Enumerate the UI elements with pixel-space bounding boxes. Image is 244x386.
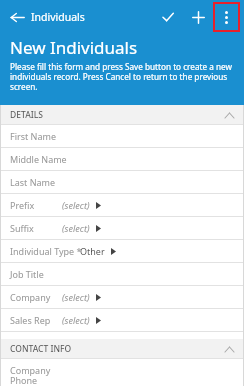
button[interactable]: First Name	[0, 125, 244, 147]
staticText: (select)	[62, 222, 90, 234]
button[interactable]: Middle Name	[0, 148, 244, 170]
button[interactable]: DETAILS	[0, 105, 244, 124]
staticText: Individual Type *	[10, 245, 82, 257]
staticText: Suffix	[10, 222, 34, 234]
button[interactable]: Individuals	[0, 0, 93, 34]
staticText: Please fill this form and press Save but…	[10, 61, 232, 93]
staticText: Prefix	[10, 199, 35, 211]
button[interactable]: Save	[153, 2, 183, 32]
button[interactable]: Job Title	[0, 263, 244, 285]
button[interactable]: Last Name	[0, 171, 244, 193]
staticText: Last Name	[10, 176, 56, 188]
button[interactable]: Individual Type *	[0, 240, 244, 262]
staticText: New Individuals	[10, 36, 138, 59]
staticText: Company	[10, 291, 51, 303]
staticText: CONTACT INFO	[10, 343, 72, 355]
staticText: Middle Name	[10, 153, 67, 165]
staticText: (select)	[62, 291, 90, 303]
button[interactable]: Company Phone	[0, 359, 244, 386]
staticText: DETAILS	[10, 109, 43, 121]
button[interactable]: CONTACT INFO	[0, 339, 244, 358]
staticText: (select)	[62, 314, 90, 326]
button[interactable]: Add	[183, 2, 213, 32]
button[interactable]: Sales Rep	[0, 309, 244, 331]
staticText: Other	[80, 245, 105, 257]
button[interactable]: Suffix	[0, 217, 244, 239]
staticText: Company Phone	[10, 364, 51, 386]
button[interactable]: More options	[213, 2, 240, 32]
staticText: First Name	[10, 130, 56, 142]
staticText: Individuals	[31, 10, 85, 24]
button[interactable]: Prefix	[0, 194, 244, 216]
staticText: (select)	[62, 199, 90, 211]
staticText: Job Title	[10, 268, 44, 280]
staticText: Sales Rep	[10, 314, 51, 326]
button[interactable]: Company	[0, 286, 244, 308]
